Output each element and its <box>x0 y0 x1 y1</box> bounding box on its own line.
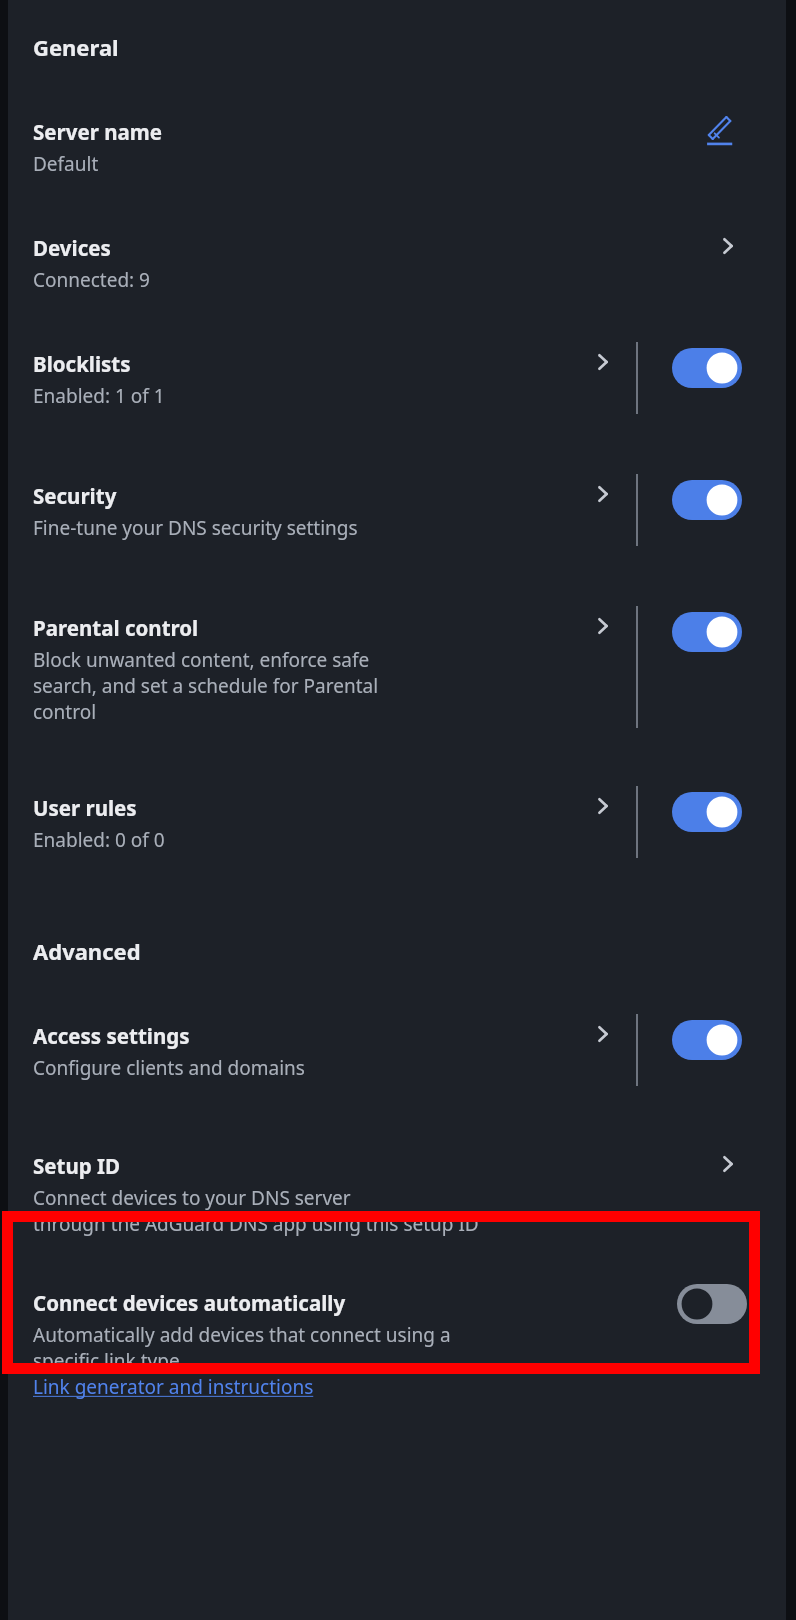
staticText: Advanced <box>33 936 141 966</box>
staticText: Configure clients and domains <box>33 1055 305 1081</box>
other: Parental control <box>588 611 618 641</box>
button[interactable]: Blocklists <box>8 350 786 422</box>
other: Blocklists <box>588 347 618 377</box>
staticText: search, and set a schedule for Parental <box>33 673 379 699</box>
staticText: through the AdGuard DNS app using this s… <box>33 1211 479 1237</box>
staticText: Automatically add devices that connect u… <box>33 1322 451 1348</box>
button[interactable]: Parental control <box>8 614 786 736</box>
other: Devices <box>713 231 743 261</box>
staticText: Parental control <box>33 614 199 642</box>
button[interactable]: Toggle off <box>677 1284 747 1324</box>
other: Security <box>588 479 618 509</box>
button[interactable]: Toggle on <box>672 348 742 388</box>
button[interactable]: Connect devices automatically <box>8 1289 786 1400</box>
staticText: Security <box>33 482 117 510</box>
staticText: Access settings <box>33 1022 190 1050</box>
button[interactable]: Security <box>8 482 786 554</box>
staticText: Enabled: 0 of 0 <box>33 827 165 853</box>
button[interactable]: User rules <box>8 794 786 866</box>
button[interactable]: Link generator and instructions <box>33 1374 314 1400</box>
staticText: Link generator and instructions <box>33 1374 314 1400</box>
staticText: Devices <box>33 234 111 262</box>
staticText: User rules <box>33 794 137 822</box>
staticText: Default <box>33 151 99 177</box>
staticText: Block unwanted content, enforce safe <box>33 647 370 673</box>
staticText: General <box>33 32 119 62</box>
staticText: Connected: 9 <box>33 267 150 293</box>
button[interactable]: Devices <box>8 234 786 293</box>
staticText: Server name <box>33 118 162 146</box>
button[interactable]: Access settings <box>8 1022 786 1094</box>
staticText: Enabled: 1 of 1 <box>33 383 165 409</box>
staticText: specific link type <box>33 1348 180 1374</box>
other: Access settings <box>588 1019 618 1049</box>
staticText: Fine-tune your DNS security settings <box>33 515 358 541</box>
button[interactable]: Toggle on <box>672 1020 742 1060</box>
staticText: Blocklists <box>33 350 131 378</box>
button[interactable]: Toggle on <box>672 480 742 520</box>
button[interactable]: Toggle on <box>672 612 742 652</box>
button[interactable]: Server name <box>8 118 786 177</box>
staticText: Connect devices automatically <box>33 1289 346 1317</box>
staticText: control <box>33 699 97 725</box>
button[interactable]: Setup ID <box>8 1152 786 1237</box>
other: Setup ID <box>713 1149 743 1179</box>
staticText: Setup ID <box>33 1152 121 1180</box>
button[interactable]: Toggle on <box>672 792 742 832</box>
other: Edit server name <box>703 114 737 148</box>
staticText: Connect devices to your DNS server <box>33 1185 351 1211</box>
other: User rules <box>588 791 618 821</box>
